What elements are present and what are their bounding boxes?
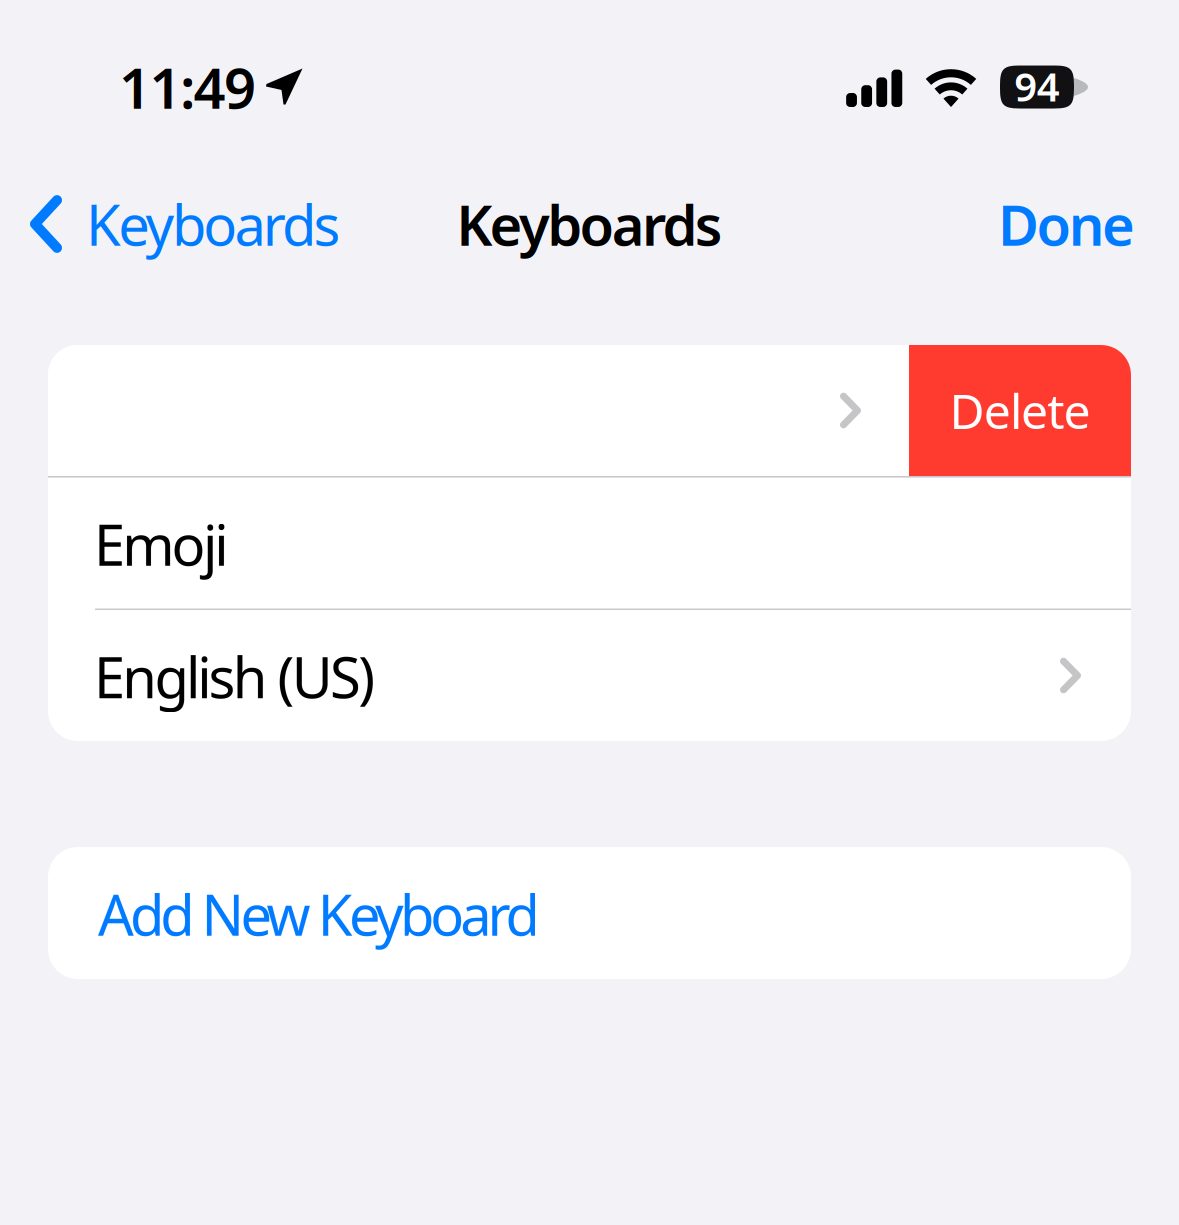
staticText: 11:49 bbox=[119, 50, 256, 124]
button[interactable]: English (US) bbox=[48, 610, 1131, 741]
staticText: Emoji bbox=[94, 507, 228, 581]
staticText: Delete bbox=[949, 379, 1090, 442]
staticText: Done bbox=[998, 187, 1135, 261]
button[interactable]: Add New Keyboard bbox=[48, 847, 1131, 979]
button[interactable]: Keyboard settings bbox=[48, 345, 909, 476]
staticText: Keyboards bbox=[456, 187, 723, 261]
staticText: English (US) bbox=[94, 639, 375, 714]
button[interactable]: Delete bbox=[909, 345, 1131, 476]
button[interactable]: Emoji bbox=[48, 477, 1131, 608]
staticText: 94 bbox=[1014, 59, 1060, 112]
staticText: Keyboards bbox=[86, 187, 340, 261]
staticText: Add New Keyboard bbox=[98, 877, 539, 951]
button[interactable]: Done bbox=[974, 180, 1179, 268]
button[interactable]: Back to Keyboards bbox=[0, 180, 356, 268]
